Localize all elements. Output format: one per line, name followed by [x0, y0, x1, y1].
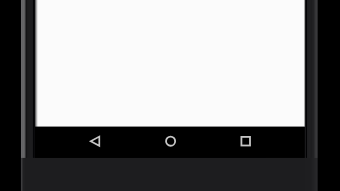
button[interactable]: Home: [133, 127, 208, 158]
button[interactable]: Recent apps: [208, 127, 304, 158]
button[interactable]: Back: [35, 127, 133, 158]
